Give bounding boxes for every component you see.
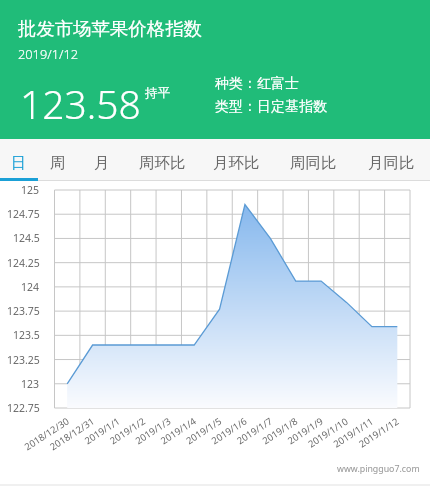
staticText: 种类：红富士 [215, 75, 299, 93]
staticText: 月环比 [213, 153, 260, 172]
button[interactable]: 日 [0, 139, 38, 181]
staticText: 周同比 [290, 153, 337, 172]
staticText: 类型：日定基指数 [215, 98, 327, 116]
button[interactable]: 月环比 [197, 139, 275, 181]
button[interactable]: 周环比 [127, 139, 197, 181]
staticText: 2019/1/12 [18, 45, 79, 62]
staticText: 批发市场苹果价格指数 [18, 17, 202, 40]
staticText: 月 [94, 153, 110, 172]
staticText: 周 [50, 153, 66, 172]
staticText: 日 [11, 153, 27, 172]
button[interactable]: 周同比 [275, 139, 352, 181]
staticText: 月同比 [368, 153, 415, 172]
staticText: 123.58 [20, 77, 141, 130]
button[interactable]: 周 [38, 139, 77, 181]
staticText: 周环比 [139, 153, 186, 172]
button[interactable]: 月同比 [352, 139, 430, 181]
staticText: 持平 [145, 85, 170, 101]
button[interactable]: 月 [77, 139, 127, 181]
